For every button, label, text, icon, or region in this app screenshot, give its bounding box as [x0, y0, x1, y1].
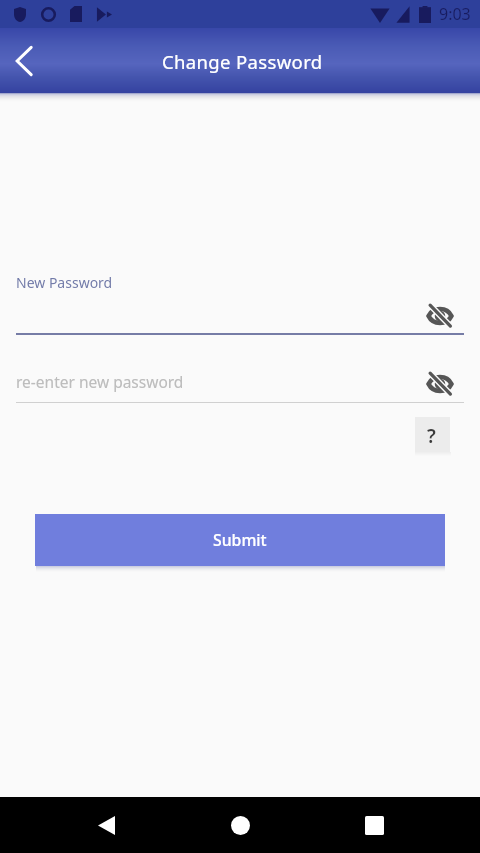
button[interactable]: Recent apps: [352, 803, 396, 847]
button[interactable]: Submit: [35, 514, 445, 566]
staticText: New Password: [16, 273, 113, 292]
button[interactable]: Back: [1, 38, 47, 84]
button[interactable]: ?: [415, 417, 450, 452]
staticText: ?: [427, 423, 436, 449]
staticText: 9:03: [439, 3, 471, 25]
button[interactable]: Back: [84, 803, 128, 847]
button[interactable]: Toggle new password visibility: [424, 299, 456, 331]
staticText: Submit: [213, 529, 267, 551]
button[interactable]: Home: [218, 803, 262, 847]
button[interactable]: Toggle confirm password visibility: [424, 367, 456, 399]
staticText: Change Password: [162, 49, 323, 74]
staticText: re-enter new password: [16, 371, 184, 392]
